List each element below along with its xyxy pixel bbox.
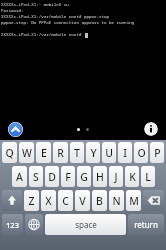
button[interactable]: T (70, 142, 84, 163)
button[interactable]: XXXXXs-iPod-X1:~ mobile$ su (0, 0, 166, 118)
staticText: T (74, 146, 80, 160)
staticText: XXXXXs-iPod-X1:/var/mobile root# pppoe-s… (1, 14, 110, 20)
button[interactable]: Scroll up (8, 122, 23, 137)
staticText: W (22, 146, 32, 160)
button[interactable]: X (41, 190, 56, 211)
button[interactable]: space (45, 214, 126, 235)
button[interactable]: O (134, 142, 148, 163)
staticText: space (75, 219, 97, 230)
button[interactable]: A (12, 166, 27, 187)
button[interactable]: Y (86, 142, 100, 163)
staticText: K (129, 170, 136, 184)
staticText: pppoe-stop: No PPPoE connection appears … (1, 20, 135, 26)
button[interactable]: Change keyboard (25, 214, 43, 235)
button[interactable]: S (29, 166, 43, 187)
button[interactable]: P (150, 142, 164, 163)
staticText: L (145, 170, 151, 184)
staticText: return (134, 219, 158, 230)
staticText: O (137, 146, 146, 160)
staticText: H (96, 170, 104, 184)
staticText: C (62, 194, 69, 208)
button[interactable]: H (93, 166, 107, 187)
button[interactable]: Z (24, 190, 39, 211)
staticText: X (45, 194, 52, 208)
button[interactable]: U (102, 142, 116, 163)
button[interactable]: Info (144, 122, 158, 136)
staticText: M (129, 194, 139, 208)
staticText: XXXXXs-iPod-X1:~ mobile$ su (1, 2, 69, 8)
staticText: XXXXXs-iPod-X1:/var/mobile root# (1, 32, 84, 38)
staticText: P (154, 146, 161, 160)
button[interactable]: I (118, 142, 132, 163)
button[interactable]: 123 (2, 214, 23, 235)
button[interactable]: return (128, 214, 164, 235)
button[interactable]: Q (2, 142, 17, 163)
button[interactable]: R (53, 142, 68, 163)
staticText: J (114, 170, 118, 184)
button[interactable]: K (125, 166, 139, 187)
button[interactable]: F (61, 166, 75, 187)
staticText: Z (28, 194, 35, 208)
staticText: F (65, 170, 71, 184)
button[interactable]: Delete (143, 190, 164, 211)
staticText: V (79, 194, 86, 208)
staticText: A (16, 170, 23, 184)
staticText: Password: (1, 8, 24, 14)
staticText: B (96, 194, 103, 208)
button[interactable]: Shift (2, 190, 22, 211)
button[interactable]: V (75, 190, 90, 211)
staticText: Y (90, 146, 97, 160)
staticText: 123 (6, 220, 19, 230)
button[interactable]: W (19, 142, 34, 163)
button[interactable]: L (141, 166, 155, 187)
staticText: N (112, 194, 121, 208)
button[interactable]: E (36, 142, 51, 163)
button[interactable]: G (77, 166, 91, 187)
staticText: I (123, 146, 127, 160)
staticText: Q (5, 146, 14, 160)
button[interactable]: C (58, 190, 73, 211)
button[interactable]: M (126, 190, 141, 211)
button[interactable]: B (92, 190, 107, 211)
staticText: U (105, 146, 113, 160)
staticText: D (48, 170, 56, 184)
button[interactable]: N (109, 190, 124, 211)
staticText: R (57, 146, 64, 160)
button[interactable]: J (109, 166, 123, 187)
staticText: G (80, 170, 88, 184)
staticText: S (33, 170, 39, 184)
staticText: E (41, 146, 47, 160)
button[interactable]: D (45, 166, 59, 187)
